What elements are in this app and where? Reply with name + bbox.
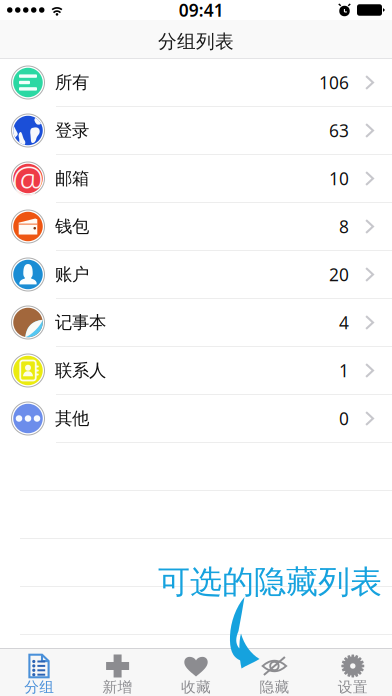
button[interactable]: 联系人 bbox=[0, 347, 392, 395]
staticText: 63 bbox=[329, 119, 349, 142]
staticText: 联系人 bbox=[55, 360, 106, 381]
staticText: 设置 bbox=[338, 678, 368, 696]
staticText: 8 bbox=[339, 215, 349, 238]
staticText: 4 bbox=[339, 311, 349, 334]
staticText: 106 bbox=[319, 71, 349, 94]
button[interactable]: 分组 bbox=[0, 649, 78, 696]
staticText: 1 bbox=[339, 359, 349, 382]
button[interactable]: 新增 bbox=[78, 649, 157, 696]
button[interactable]: 钱包 bbox=[0, 203, 392, 251]
staticText: 账户 bbox=[55, 264, 89, 285]
button[interactable]: 其他 bbox=[0, 395, 392, 443]
staticText: 10 bbox=[329, 167, 349, 190]
staticText: 分组列表 bbox=[158, 30, 234, 53]
staticText: 可选的隐藏列表 bbox=[158, 562, 382, 602]
button[interactable]: 隐藏 bbox=[235, 649, 314, 696]
staticText: @ bbox=[12, 155, 44, 202]
staticText: 收藏 bbox=[181, 678, 211, 696]
button[interactable]: @ bbox=[0, 155, 392, 203]
staticText: 登录 bbox=[55, 120, 89, 141]
staticText: 所有 bbox=[55, 72, 89, 93]
staticText: 其他 bbox=[55, 408, 89, 429]
staticText: 新增 bbox=[103, 678, 133, 696]
staticText: 邮箱 bbox=[55, 168, 89, 189]
button[interactable]: 记事本 bbox=[0, 299, 392, 347]
staticText: 20 bbox=[329, 263, 349, 286]
staticText: 隐藏 bbox=[259, 678, 289, 696]
button[interactable]: 设置 bbox=[314, 649, 392, 696]
button[interactable]: 登录 bbox=[0, 107, 392, 155]
staticText: 0 bbox=[339, 407, 349, 430]
button[interactable]: 所有 bbox=[0, 59, 392, 107]
button[interactable]: 收藏 bbox=[157, 649, 235, 696]
button[interactable]: 账户 bbox=[0, 251, 392, 299]
staticText: 09:41 bbox=[179, 0, 224, 21]
staticText: 分组 bbox=[24, 678, 54, 696]
staticText: 记事本 bbox=[55, 312, 106, 333]
staticText: 钱包 bbox=[55, 216, 89, 237]
